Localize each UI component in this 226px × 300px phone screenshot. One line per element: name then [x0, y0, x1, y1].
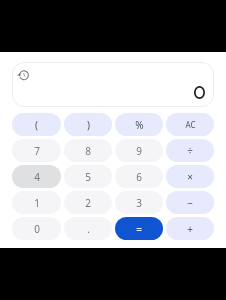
- button[interactable]: +: [166, 217, 214, 240]
- button[interactable]: 9: [115, 139, 163, 162]
- button[interactable]: 5: [64, 165, 112, 188]
- staticText: (: [35, 118, 38, 132]
- button[interactable]: ×: [166, 165, 214, 188]
- button[interactable]: AC: [166, 113, 214, 136]
- staticText: %: [135, 118, 144, 132]
- button[interactable]: 2: [64, 191, 112, 214]
- staticText: 2: [85, 196, 91, 210]
- staticText: 9: [136, 144, 142, 158]
- button[interactable]: 4: [12, 165, 61, 188]
- staticText: 5: [85, 170, 91, 184]
- button[interactable]: 1: [12, 191, 61, 214]
- button[interactable]: −: [166, 191, 214, 214]
- staticText: 4: [34, 170, 40, 184]
- button[interactable]: 8: [64, 139, 112, 162]
- button[interactable]: 0: [12, 217, 61, 240]
- staticText: −: [187, 196, 193, 210]
- button[interactable]: %: [115, 113, 163, 136]
- button[interactable]: ÷: [166, 139, 214, 162]
- button[interactable]: 7: [12, 139, 61, 162]
- staticText: ÷: [187, 144, 193, 158]
- button[interactable]: History: [14, 66, 32, 84]
- button[interactable]: 6: [115, 165, 163, 188]
- button[interactable]: ): [64, 113, 112, 136]
- staticText: ): [87, 118, 90, 132]
- staticText: +: [187, 222, 193, 236]
- staticText: =: [136, 222, 142, 236]
- button[interactable]: History: [12, 62, 214, 107]
- button[interactable]: 3: [115, 191, 163, 214]
- button[interactable]: (: [12, 113, 61, 136]
- staticText: 0: [34, 222, 40, 236]
- staticText: .: [87, 222, 90, 236]
- staticText: 6: [136, 170, 142, 184]
- button[interactable]: .: [64, 217, 112, 240]
- staticText: ×: [187, 170, 193, 184]
- staticText: 1: [34, 196, 40, 210]
- staticText: AC: [185, 119, 196, 130]
- staticText: 8: [85, 144, 91, 158]
- staticText: 3: [136, 196, 142, 210]
- button[interactable]: =: [115, 217, 163, 240]
- staticText: 7: [34, 144, 40, 158]
